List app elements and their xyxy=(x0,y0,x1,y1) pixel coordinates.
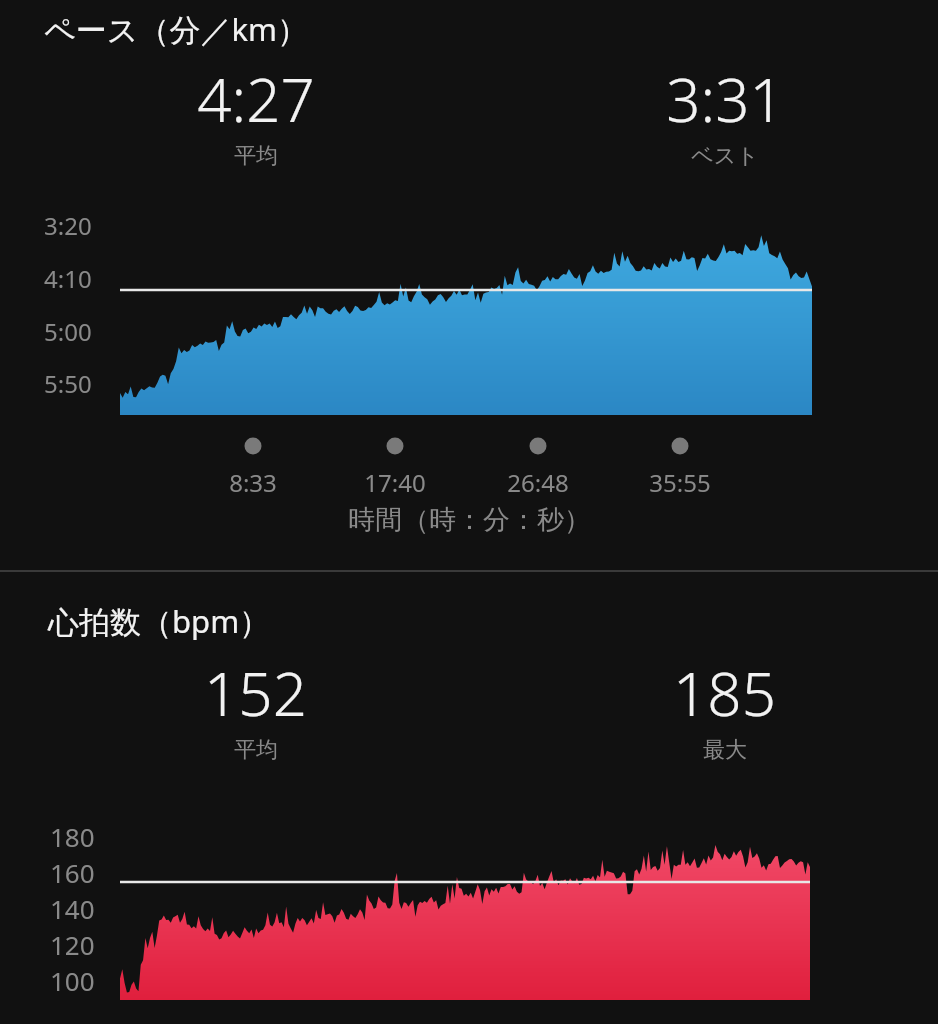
staticText: 平均 xyxy=(234,736,278,764)
staticText: 4:10 xyxy=(44,262,92,295)
button[interactable]: Pace chart xyxy=(120,231,812,415)
staticText: 8:33 xyxy=(229,466,277,498)
staticText: 17:40 xyxy=(364,466,426,498)
button[interactable]: 3:31 xyxy=(511,58,938,168)
staticText: 120 xyxy=(50,927,95,962)
staticText: 140 xyxy=(50,891,95,926)
staticText: 100 xyxy=(50,963,95,998)
button[interactable]: 4:27 xyxy=(0,58,511,168)
staticText: 平均 xyxy=(234,142,278,170)
staticText: 最大 xyxy=(703,736,747,764)
button[interactable]: 185 xyxy=(511,652,938,762)
staticText: 185 xyxy=(673,652,776,734)
button[interactable]: Heart rate chart xyxy=(120,818,810,1000)
staticText: ベスト xyxy=(691,142,759,170)
staticText: 160 xyxy=(50,855,95,890)
button[interactable]: 152 xyxy=(0,652,511,762)
staticText: 5:50 xyxy=(44,367,92,400)
staticText: ペース（分／km） xyxy=(44,8,308,50)
staticText: 152 xyxy=(204,652,307,734)
staticText: 3:31 xyxy=(666,58,784,140)
staticText: 時間（時：分：秒） xyxy=(348,503,591,537)
staticText: 35:55 xyxy=(649,466,711,498)
staticText: 心拍数（bpm） xyxy=(48,600,271,642)
staticText: 3:20 xyxy=(44,209,92,242)
staticText: 26:48 xyxy=(507,466,569,498)
staticText: 180 xyxy=(50,819,95,854)
staticText: 4:27 xyxy=(197,58,315,140)
staticText: 5:00 xyxy=(44,315,92,348)
